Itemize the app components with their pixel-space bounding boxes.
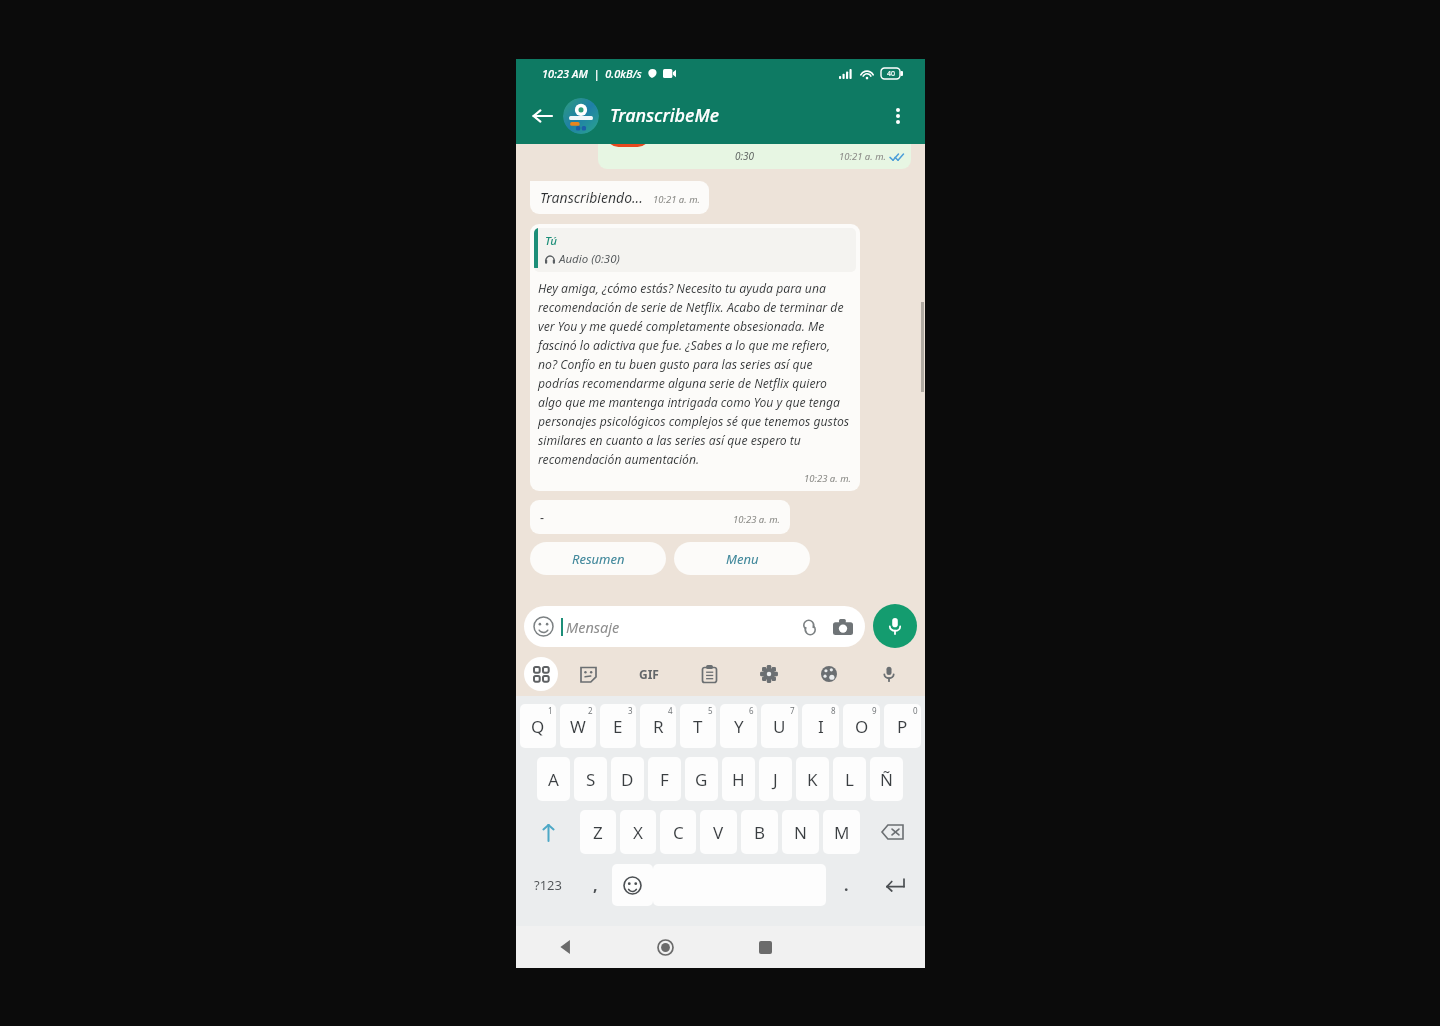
staticText: M xyxy=(834,821,850,844)
staticText: E xyxy=(613,715,623,738)
button[interactable]: sticker xyxy=(558,654,619,694)
staticText: Ñ xyxy=(880,768,893,791)
button[interactable]: Attach xyxy=(796,614,822,640)
button[interactable]: palette xyxy=(799,654,859,694)
staticText: . xyxy=(844,874,849,896)
staticText: 6 xyxy=(749,705,754,716)
staticText: L xyxy=(845,768,854,791)
staticText: H xyxy=(732,768,745,791)
button[interactable]: N xyxy=(782,810,819,854)
button[interactable]: F xyxy=(648,757,681,801)
button[interactable]: J xyxy=(759,757,792,801)
button[interactable]: Z xyxy=(580,810,616,854)
staticText: Menu xyxy=(726,550,759,568)
button[interactable]: C xyxy=(660,810,696,854)
staticText: , xyxy=(593,874,598,896)
button[interactable]: P xyxy=(884,704,921,748)
button[interactable]: M xyxy=(823,810,860,854)
staticText: U xyxy=(773,715,786,738)
button[interactable]: Recents xyxy=(715,926,815,968)
staticText: A xyxy=(548,768,559,791)
button[interactable]: V xyxy=(700,810,737,854)
button[interactable]: Record voice message xyxy=(873,604,917,648)
button[interactable]: Keyboard apps xyxy=(524,657,558,691)
button[interactable]: Transcribiendo... xyxy=(530,181,709,214)
button[interactable]: O xyxy=(843,704,880,748)
button[interactable]: Q xyxy=(520,704,556,748)
staticText: ?123 xyxy=(534,876,562,894)
button[interactable]: gear xyxy=(739,654,799,694)
staticText: 2 xyxy=(588,705,593,716)
staticText: 10:21 a. m. xyxy=(839,150,886,163)
staticText: 7 xyxy=(790,705,795,716)
staticText: J xyxy=(773,768,778,791)
staticText: Q xyxy=(531,715,545,738)
button[interactable]: A xyxy=(537,757,570,801)
button[interactable]: Emoji xyxy=(612,864,653,906)
button[interactable]: L xyxy=(833,757,866,801)
button[interactable]: Backspace xyxy=(862,808,923,856)
button[interactable]: Camera xyxy=(830,614,856,640)
staticText: Resumen xyxy=(572,550,625,568)
staticText: 0:30 xyxy=(735,149,755,163)
button[interactable]: G xyxy=(685,757,718,801)
staticText: Tú xyxy=(545,233,558,249)
staticText: 8 xyxy=(831,705,836,716)
staticText: 9 xyxy=(872,705,877,716)
staticText: G xyxy=(695,768,708,791)
staticText: 3 xyxy=(628,705,633,716)
button[interactable]: mic xyxy=(859,654,919,694)
staticText: Hey amiga, ¿cómo estás? Necesito tu ayud… xyxy=(538,280,852,468)
button[interactable]: B xyxy=(741,810,778,854)
staticText: T xyxy=(693,715,703,738)
button[interactable]: E xyxy=(600,704,636,748)
staticText: N xyxy=(794,821,807,844)
button[interactable]: Enter xyxy=(867,861,923,909)
button[interactable]: Home xyxy=(615,926,715,968)
button[interactable]: W xyxy=(560,704,596,748)
button[interactable]: D xyxy=(611,757,644,801)
button[interactable]: Mensaje xyxy=(524,606,865,647)
button[interactable]: Tú xyxy=(530,224,860,491)
staticText: D xyxy=(621,768,634,791)
button[interactable]: Back xyxy=(516,926,615,968)
button[interactable]: Y xyxy=(720,704,757,748)
button[interactable]: S xyxy=(574,757,607,801)
button[interactable]: GIF xyxy=(619,654,679,694)
button[interactable]: ?123 xyxy=(518,861,578,909)
button[interactable]: , xyxy=(578,861,612,909)
button[interactable]: clip xyxy=(679,654,739,694)
button[interactable]: U xyxy=(761,704,798,748)
staticText: Mensaje xyxy=(566,617,796,637)
staticText: Transcribiendo... xyxy=(540,188,643,207)
staticText: 4 xyxy=(668,705,673,716)
staticText: I xyxy=(818,715,824,738)
button[interactable]: K xyxy=(796,757,829,801)
button[interactable]: Ñ xyxy=(870,757,903,801)
staticText: TranscribeMe xyxy=(610,103,720,128)
button[interactable]: Resumen xyxy=(530,542,666,575)
staticText: Y xyxy=(734,715,744,738)
button[interactable]: H xyxy=(722,757,755,801)
button[interactable]: Back xyxy=(523,97,561,135)
staticText: R xyxy=(653,715,664,738)
button[interactable]: . xyxy=(826,861,867,909)
button[interactable]: Menu xyxy=(674,542,810,575)
staticText: O xyxy=(855,715,869,738)
button[interactable]: T xyxy=(680,704,716,748)
button[interactable]: - xyxy=(530,500,790,534)
staticText: 10:23 AM | 0.0kB/s xyxy=(542,66,642,81)
button[interactable]: X xyxy=(620,810,656,854)
button[interactable]: I xyxy=(802,704,839,748)
button[interactable]: R xyxy=(640,704,676,748)
button[interactable]: TranscribeMe xyxy=(610,103,881,128)
staticText: W xyxy=(570,715,586,738)
button[interactable]: Shift xyxy=(518,808,578,856)
button[interactable]: Profile photo xyxy=(563,98,599,134)
button[interactable]: More options xyxy=(881,99,915,133)
staticText: 10:23 a. m. xyxy=(733,513,780,526)
staticText: S xyxy=(586,768,596,791)
button[interactable]: 0:30 xyxy=(598,144,911,169)
staticText: Audio (0:30) xyxy=(559,251,620,267)
